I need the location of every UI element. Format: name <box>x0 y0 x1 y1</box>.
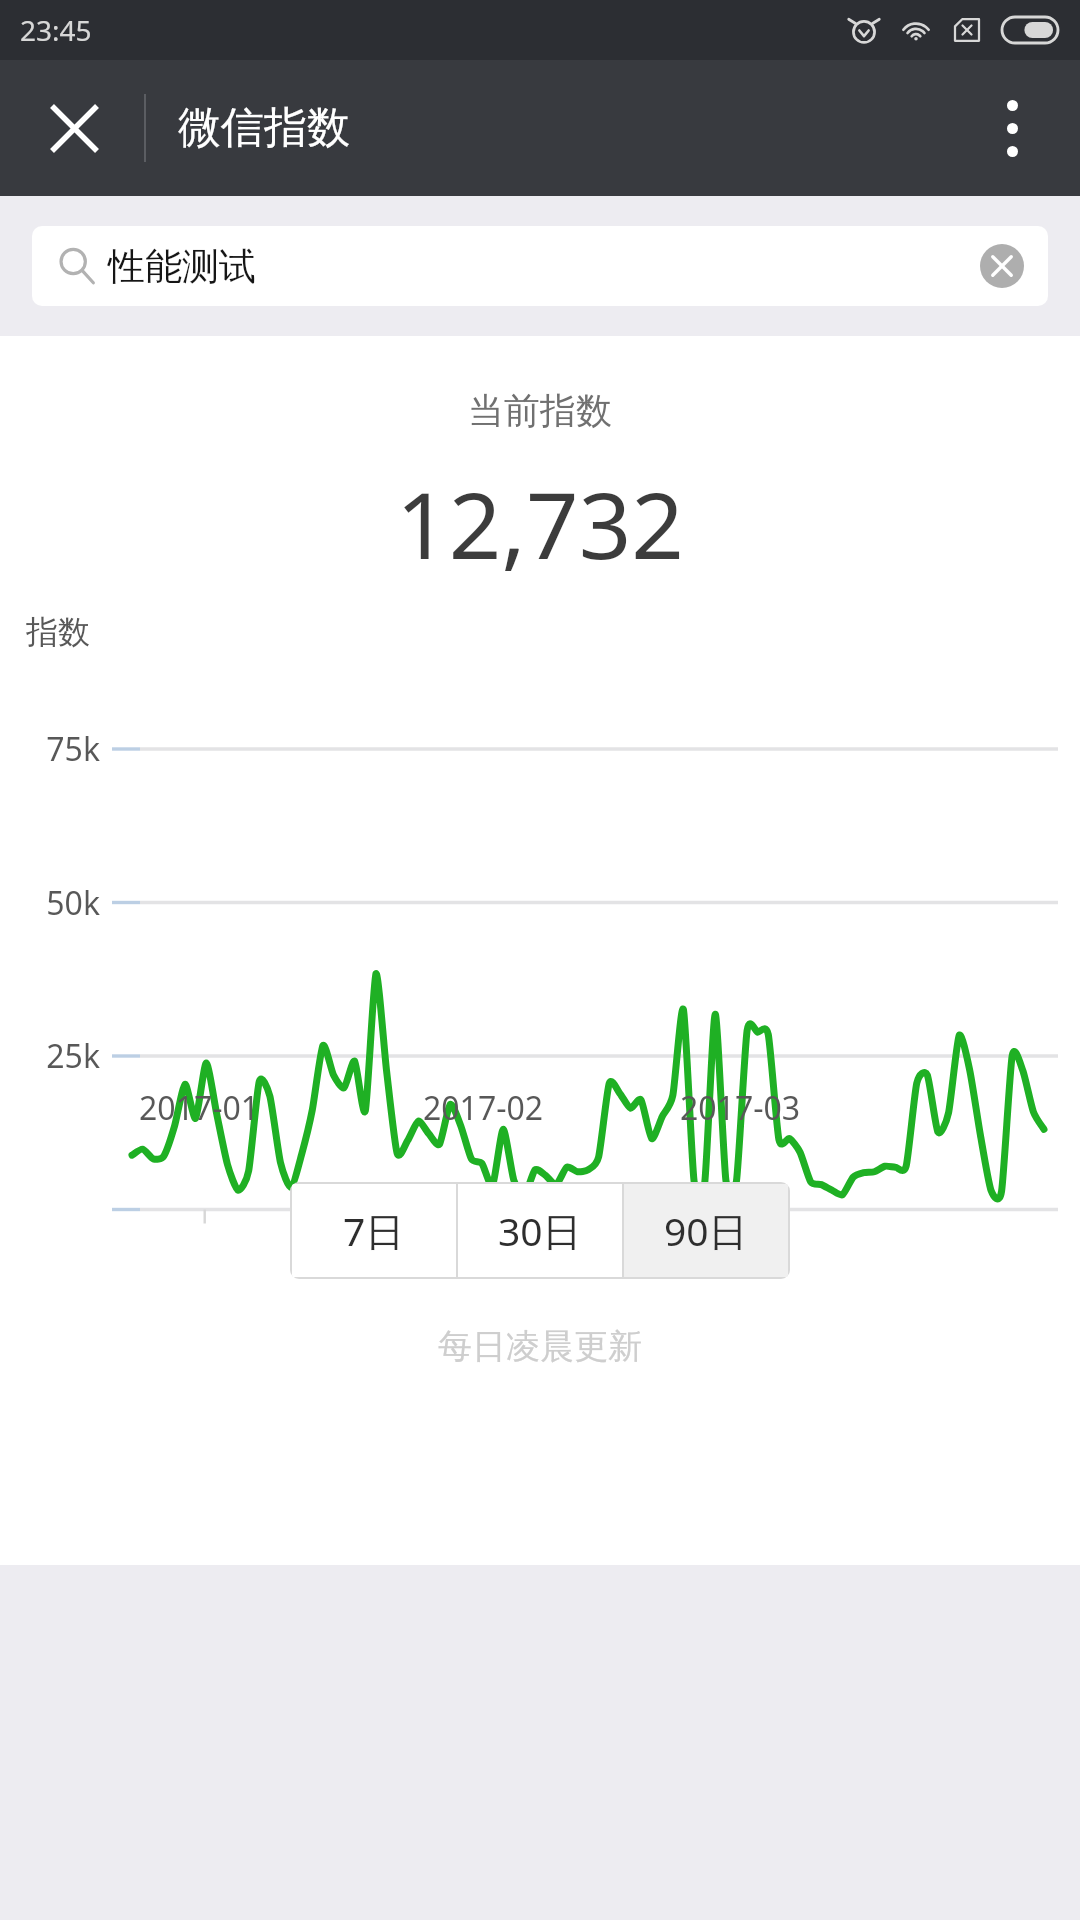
button[interactable]: 90日 <box>624 1184 788 1277</box>
staticText: 指数 <box>26 612 90 652</box>
button[interactable]: 性能测试 <box>32 226 1048 306</box>
staticText: 25k <box>0 1034 100 1078</box>
staticText: 当前指数 <box>0 388 1080 433</box>
button[interactable]: More options <box>964 80 1060 176</box>
button[interactable]: 30日 <box>458 1184 622 1277</box>
staticText: 2017-01 <box>139 1086 260 1130</box>
staticText: 2017-03 <box>680 1086 801 1130</box>
staticText: 30日 <box>498 1204 582 1257</box>
staticText: 性能测试 <box>108 243 256 290</box>
staticText: 75k <box>0 727 100 771</box>
staticText: 50k <box>0 881 100 925</box>
button[interactable]: 7日 <box>292 1184 456 1277</box>
button[interactable]: Close <box>26 80 122 176</box>
staticText: 每日凌晨更新 <box>0 1325 1080 1368</box>
staticText: 23:45 <box>20 11 92 49</box>
staticText: 微信指数 <box>178 101 350 155</box>
button[interactable]: Clear text <box>970 234 1034 298</box>
staticText: 90日 <box>664 1204 748 1257</box>
staticText: 12,732 <box>0 461 1080 586</box>
staticText: 7日 <box>343 1204 405 1257</box>
staticText: 2017-02 <box>423 1086 544 1130</box>
